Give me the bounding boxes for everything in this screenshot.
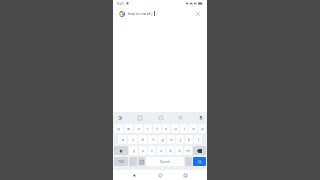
button[interactable]: GIF — [137, 115, 142, 120]
button[interactable]: Deutsch — [146, 157, 184, 166]
button[interactable]: s — [128, 135, 137, 144]
button[interactable]: a — [118, 135, 127, 144]
staticText: m — [186, 148, 190, 153]
staticText: k — [188, 137, 190, 142]
button[interactable]: t — [153, 124, 161, 133]
button[interactable]: f — [148, 135, 157, 144]
button[interactable]: , — [129, 157, 137, 166]
button[interactable]: k — [185, 135, 193, 144]
button[interactable]: l — [194, 135, 202, 144]
button[interactable]: d — [138, 135, 147, 144]
button[interactable]: m — [184, 146, 192, 155]
staticText: how to install j — [128, 11, 153, 16]
button[interactable]: ?123 — [114, 157, 128, 166]
staticText: , — [133, 159, 134, 164]
staticText: o — [192, 126, 195, 131]
button[interactable]: i — [180, 124, 188, 133]
staticText: c — [151, 148, 153, 153]
staticText: v — [160, 148, 162, 153]
button[interactable]: Voice input — [198, 115, 203, 120]
button[interactable]: Emoji — [138, 157, 145, 166]
button[interactable]: w — [124, 124, 133, 133]
staticText: r — [147, 126, 149, 131]
button[interactable]: Google search suggestions — [117, 115, 122, 120]
staticText: z — [165, 126, 167, 131]
staticText: l — [198, 137, 199, 142]
staticText: Deutsch — [160, 160, 170, 164]
button[interactable]: y — [129, 146, 138, 155]
staticText: y — [133, 148, 135, 153]
button[interactable]: Back — [130, 171, 139, 180]
button[interactable]: c — [148, 146, 156, 155]
staticText: 9:41 — [117, 1, 124, 6]
staticText: s — [132, 137, 134, 142]
button[interactable]: v — [157, 146, 165, 155]
button[interactable]: g — [158, 135, 166, 144]
staticText: e — [138, 126, 140, 131]
staticText: q — [117, 126, 120, 131]
button[interactable]: q — [114, 124, 123, 133]
staticText: w — [127, 126, 130, 131]
staticText: g — [161, 137, 164, 142]
button[interactable]: Backspace — [193, 146, 206, 155]
button[interactable]: h — [167, 135, 175, 144]
staticText: ?123 — [118, 160, 124, 164]
staticText: n — [178, 148, 181, 153]
button[interactable]: e — [134, 124, 143, 133]
button[interactable]: j — [176, 135, 184, 144]
staticText: h — [170, 137, 173, 142]
staticText: b — [169, 148, 172, 153]
staticText: j — [180, 137, 181, 142]
button[interactable]: Home — [156, 171, 165, 180]
staticText: i — [184, 126, 185, 131]
button[interactable]: o — [189, 124, 197, 133]
button[interactable]: Settings — [178, 115, 183, 120]
button[interactable]: Search — [193, 157, 206, 166]
button[interactable]: how to install j — [116, 8, 204, 19]
staticText: d — [141, 137, 144, 142]
staticText: p — [201, 126, 204, 131]
button[interactable]: . — [185, 157, 192, 166]
staticText: u — [174, 126, 177, 131]
button[interactable]: u — [171, 124, 179, 133]
button[interactable]: r — [144, 124, 152, 133]
button[interactable]: z — [162, 124, 170, 133]
button[interactable]: b — [166, 146, 174, 155]
staticText: a — [122, 137, 124, 142]
staticText: t — [156, 126, 158, 131]
button[interactable]: Shift — [114, 146, 128, 155]
button[interactable]: p — [198, 124, 206, 133]
staticText: . — [188, 159, 189, 164]
button[interactable]: n — [175, 146, 183, 155]
button[interactable]: Stickers — [158, 115, 163, 120]
button[interactable]: Recent apps — [181, 171, 190, 180]
button[interactable]: Clear search — [194, 10, 201, 17]
staticText: f — [152, 137, 154, 142]
button[interactable]: x — [139, 146, 147, 155]
staticText: x — [142, 148, 144, 153]
